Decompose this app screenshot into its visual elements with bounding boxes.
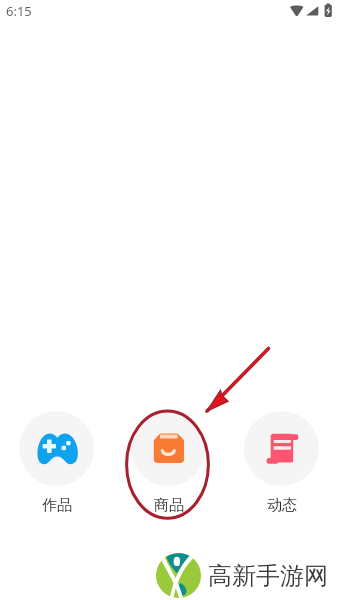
staticText: 商品	[154, 496, 184, 515]
button[interactable]: 动态	[244, 411, 319, 515]
staticText: 6:15	[6, 2, 32, 20]
button[interactable]: 商品	[131, 411, 206, 515]
staticText: 作品	[42, 496, 72, 515]
staticText: 高新手游网	[208, 561, 328, 591]
staticText: 动态	[267, 496, 297, 515]
button[interactable]: 作品	[19, 411, 94, 515]
